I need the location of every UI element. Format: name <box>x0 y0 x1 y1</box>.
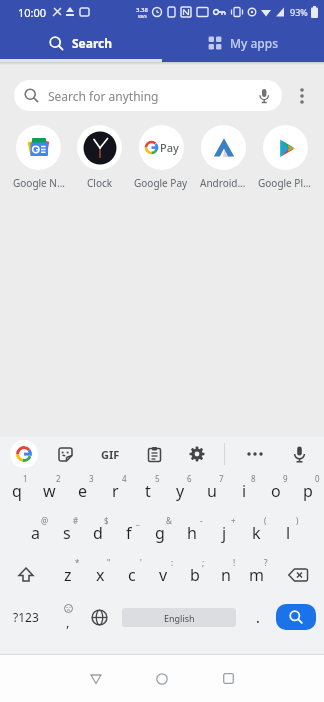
button[interactable]: n <box>210 554 241 596</box>
staticText: Search for anything <box>48 88 159 104</box>
button[interactable] <box>138 655 186 702</box>
button[interactable]: d <box>82 512 113 554</box>
button[interactable]: m <box>241 554 272 596</box>
button[interactable]: p <box>292 470 324 512</box>
button[interactable] <box>0 554 52 596</box>
button[interactable]: w <box>33 470 66 512</box>
button[interactable]: o <box>260 470 292 512</box>
button[interactable]: My apps <box>162 24 324 62</box>
button[interactable]: . <box>240 596 276 638</box>
button[interactable]: q <box>0 470 33 512</box>
button[interactable]: j <box>208 512 240 554</box>
staticText: c <box>128 564 136 586</box>
staticText: Google N... <box>13 176 65 190</box>
button[interactable]: Google Pl... <box>254 125 316 190</box>
staticText: r <box>112 480 119 502</box>
button[interactable] <box>204 655 252 702</box>
button[interactable]: a <box>20 512 51 554</box>
button[interactable]: Pay <box>130 125 192 190</box>
button[interactable] <box>72 655 120 702</box>
button[interactable]: z <box>52 554 84 596</box>
staticText: Pay <box>160 140 179 155</box>
button[interactable] <box>10 440 38 468</box>
button[interactable] <box>288 82 316 110</box>
button[interactable]: b <box>179 554 210 596</box>
staticText: a <box>31 522 40 544</box>
staticText: ) <box>296 515 299 526</box>
staticText: j <box>222 522 227 544</box>
staticText: GIF <box>101 447 120 462</box>
button[interactable]: English <box>122 608 236 627</box>
button[interactable]: ?123 <box>0 596 52 638</box>
staticText: 9 <box>283 473 288 484</box>
button[interactable] <box>50 439 80 469</box>
button[interactable]: l <box>272 512 304 554</box>
staticText: 0 <box>315 473 320 484</box>
staticText: w <box>43 480 56 502</box>
button[interactable]: v <box>148 554 179 596</box>
button[interactable]: Search <box>0 24 162 62</box>
staticText: . <box>256 608 260 627</box>
staticText: Search <box>72 35 113 51</box>
staticText: - <box>200 515 203 526</box>
button[interactable]: , <box>52 596 84 638</box>
button[interactable] <box>238 439 272 469</box>
button[interactable]: c <box>116 554 148 596</box>
button[interactable] <box>272 554 324 596</box>
staticText: t <box>145 480 151 502</box>
staticText: g <box>155 522 165 544</box>
staticText: h <box>187 522 197 544</box>
button[interactable] <box>284 439 314 469</box>
staticText: ( <box>264 515 267 526</box>
button[interactable]: t <box>132 470 164 512</box>
staticText: s <box>63 522 71 544</box>
staticText: @ <box>41 515 49 526</box>
button[interactable]: h <box>176 512 208 554</box>
button[interactable]: k <box>240 512 272 554</box>
staticText: " <box>107 557 111 568</box>
staticText: _ <box>136 515 140 526</box>
staticText: English <box>164 612 195 624</box>
button[interactable]: Google N... <box>8 125 69 190</box>
staticText: 3 <box>89 473 94 484</box>
staticText: 8 <box>251 473 256 484</box>
button[interactable]: GIF <box>93 439 127 469</box>
staticText: + <box>231 515 236 526</box>
staticText: 7 <box>219 473 224 484</box>
staticText: q <box>12 480 22 502</box>
staticText: 3.38 <box>136 6 148 14</box>
button[interactable]: x <box>84 554 116 596</box>
staticText: ; <box>202 557 205 568</box>
button[interactable]: f <box>113 512 144 554</box>
button[interactable] <box>139 439 169 469</box>
staticText: u <box>207 480 217 502</box>
staticText: b <box>190 564 200 586</box>
button[interactable]: u <box>196 470 228 512</box>
staticText: p <box>303 480 313 502</box>
button[interactable]: s <box>51 512 82 554</box>
staticText: n <box>221 564 231 586</box>
staticText: ?123 <box>13 609 39 625</box>
staticText: z <box>64 564 72 586</box>
staticText: * <box>75 557 80 568</box>
staticText: x <box>96 564 105 586</box>
button[interactable] <box>84 596 114 638</box>
button[interactable]: Android... <box>192 125 254 190</box>
staticText: y <box>176 480 185 502</box>
staticText: Android... <box>200 176 246 190</box>
button[interactable]: e <box>66 470 99 512</box>
staticText: $ <box>104 515 109 526</box>
button[interactable] <box>182 439 212 469</box>
button[interactable]: r <box>99 470 132 512</box>
button[interactable] <box>276 604 316 630</box>
button[interactable]: Search for anything <box>14 80 282 111</box>
staticText: KB/S <box>138 14 147 19</box>
button[interactable]: g <box>144 512 176 554</box>
staticText: 1 <box>23 473 28 484</box>
button[interactable]: Clock <box>69 125 130 190</box>
staticText: e <box>78 480 88 502</box>
button[interactable]: i <box>228 470 260 512</box>
staticText: Clock <box>87 176 113 190</box>
button[interactable]: y <box>164 470 196 512</box>
staticText: & <box>166 515 172 526</box>
